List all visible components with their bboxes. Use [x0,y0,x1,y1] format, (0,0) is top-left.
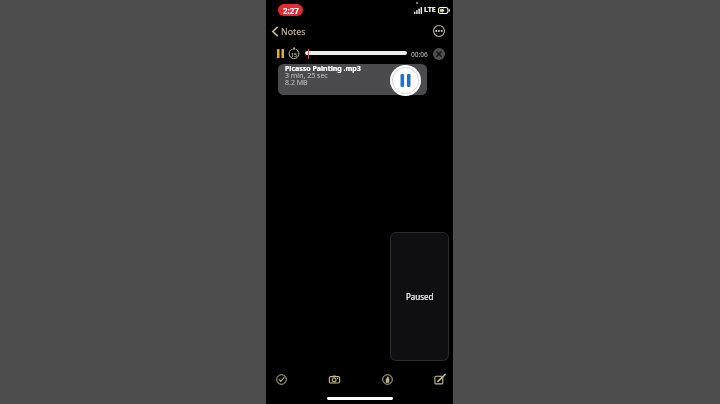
staticText: 2:27 [283,5,299,16]
staticText: Picasso Painting .mp3 [285,64,361,74]
button[interactable]: Notes [272,23,306,40]
button[interactable]: Markup [377,369,397,389]
button[interactable]: Picasso Painting .mp3 [278,64,427,95]
button[interactable]: Paused [390,232,449,361]
staticText: 00:06 [411,50,428,59]
button[interactable]: More options [432,24,446,38]
staticText: LTE [424,5,436,15]
staticText: Paused [406,291,434,302]
button[interactable]: 2:27 [278,4,303,16]
staticText: 15 [291,51,297,58]
button[interactable]: Camera [324,369,344,389]
button[interactable]: Checklist [271,369,291,389]
staticText: 8.2 MB [285,78,308,88]
staticText: 3 min, 25 sec [285,71,328,81]
button[interactable]: Pause [273,46,287,60]
button[interactable]: Pause audio [390,65,421,96]
button[interactable]: New note [429,369,449,389]
button[interactable]: Close player [432,47,445,60]
staticText: Notes [281,26,306,38]
button[interactable]: Skip back 15 seconds [287,46,301,60]
